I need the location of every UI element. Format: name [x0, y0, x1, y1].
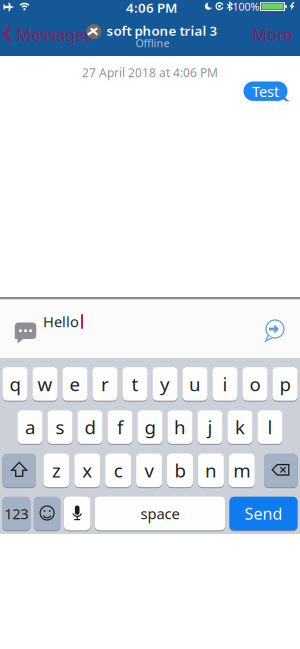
staticText: Hello: [43, 312, 79, 331]
staticText: c: [114, 458, 123, 483]
button[interactable]: r: [92, 367, 118, 401]
staticText: 100%: [232, 0, 259, 14]
staticText: l: [267, 415, 272, 439]
button[interactable]: e: [62, 367, 88, 401]
staticText: w: [37, 371, 52, 396]
staticText: g: [144, 415, 155, 439]
button[interactable]: a: [17, 410, 43, 444]
staticText: Offline: [135, 36, 169, 50]
staticText: b: [174, 458, 185, 483]
button[interactable]: Send as chat: [264, 319, 287, 342]
staticText: Test: [252, 81, 279, 101]
button[interactable]: c: [105, 453, 131, 488]
button[interactable]: Back to Messages: [1, 19, 92, 49]
staticText: h: [174, 415, 186, 439]
button[interactable]: Conversation: [15, 322, 37, 343]
button[interactable]: m: [229, 453, 255, 488]
button[interactable]: v: [136, 453, 162, 488]
button[interactable]: Numbers: [2, 496, 30, 531]
button[interactable]: k: [227, 410, 253, 444]
staticText: More: [252, 24, 292, 45]
staticText: y: [160, 371, 170, 396]
staticText: e: [69, 371, 80, 396]
button[interactable]: More: [250, 19, 294, 49]
staticText: q: [9, 371, 20, 396]
staticText: t: [131, 371, 138, 396]
staticText: space: [140, 504, 179, 523]
staticText: Send: [244, 503, 282, 524]
button[interactable]: q: [2, 367, 28, 401]
button[interactable]: Test: [243, 81, 287, 101]
button[interactable]: h: [167, 410, 193, 444]
button[interactable]: Emoji: [34, 496, 60, 531]
button[interactable]: Send: [229, 496, 297, 531]
staticText: 123: [4, 504, 28, 523]
staticText: p: [279, 371, 290, 396]
button[interactable]: w: [32, 367, 58, 401]
button[interactable]: i: [212, 367, 238, 401]
staticText: u: [189, 371, 201, 396]
button[interactable]: l: [257, 410, 283, 444]
staticText: f: [117, 415, 123, 439]
staticText: x: [82, 458, 92, 483]
staticText: 27 April 2018 at 4:06 PM: [82, 64, 218, 80]
button[interactable]: x: [74, 453, 100, 488]
button[interactable]: d: [77, 410, 103, 444]
button[interactable]: f: [107, 410, 133, 444]
staticText: j: [207, 415, 212, 439]
staticText: a: [25, 415, 35, 439]
button[interactable]: u: [182, 367, 208, 401]
staticText: soft phone trial 3: [106, 22, 217, 39]
staticText: d: [84, 415, 95, 439]
staticText: z: [52, 458, 61, 483]
button[interactable]: j: [197, 410, 223, 444]
button[interactable]: p: [272, 367, 298, 401]
staticText: Messages: [16, 24, 92, 45]
staticText: n: [205, 458, 217, 483]
button[interactable]: space: [95, 496, 225, 531]
button[interactable]: z: [43, 453, 69, 488]
staticText: o: [249, 371, 260, 396]
button[interactable]: t: [122, 367, 148, 401]
button[interactable]: o: [242, 367, 268, 401]
button[interactable]: Shift: [2, 453, 36, 488]
staticText: 4:06 PM: [126, 0, 177, 16]
button[interactable]: Delete: [264, 453, 298, 488]
button[interactable]: y: [152, 367, 178, 401]
staticText: m: [233, 458, 250, 483]
button[interactable]: b: [167, 453, 193, 488]
button[interactable]: Dictate: [64, 496, 90, 531]
staticText: k: [235, 415, 245, 439]
button[interactable]: n: [198, 453, 224, 488]
staticText: s: [55, 415, 64, 439]
staticText: i: [222, 371, 227, 396]
staticText: r: [101, 371, 109, 396]
button[interactable]: s: [47, 410, 73, 444]
button[interactable]: g: [137, 410, 163, 444]
staticText: v: [145, 458, 154, 483]
